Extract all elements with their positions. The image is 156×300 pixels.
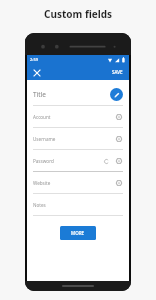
staticText: Account [33,114,51,120]
staticText: Username [33,136,56,142]
button[interactable]: Close [31,67,42,78]
staticText: Custom fields [44,7,113,21]
staticText: Website [33,180,51,186]
button[interactable]: Notes [33,194,123,216]
button[interactable]: Field settings [114,178,123,187]
staticText: Password [33,158,54,164]
button[interactable]: Field settings [114,112,123,121]
button[interactable]: Field settings [114,134,123,143]
button[interactable]: SAVE [110,67,125,77]
button[interactable]: Generate password [102,157,110,165]
button[interactable]: Username [33,128,123,150]
button[interactable]: Field settings [114,156,123,165]
staticText: Title [33,90,46,99]
staticText: Notes [33,202,46,208]
button[interactable]: Account [33,106,123,128]
button[interactable]: Title [33,83,123,106]
button[interactable]: Edit title [110,88,123,101]
button[interactable]: MORE [60,226,96,240]
button[interactable]: Website [33,172,123,194]
staticText: MORE [71,230,85,236]
staticText: SAVE [112,69,123,75]
staticText: 2:59 [30,57,38,62]
button[interactable]: Password [33,150,123,172]
